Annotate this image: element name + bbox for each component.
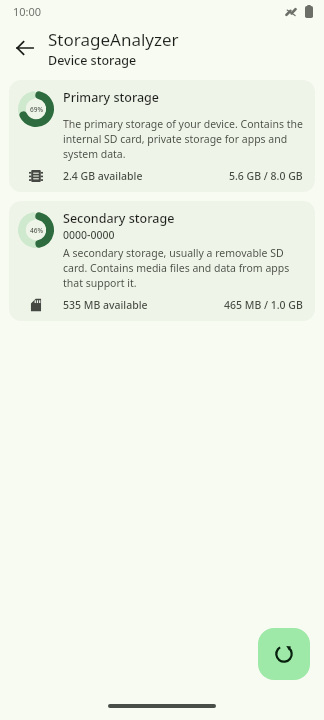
staticText: 535 MB available (63, 298, 148, 312)
button[interactable]: Refresh (258, 628, 310, 680)
staticText: StorageAnalyzer (48, 28, 179, 51)
staticText: 5.6 GB / 8.0 GB (229, 169, 303, 183)
staticText: The primary storage of your device. Cont… (63, 117, 303, 161)
staticText: 2.4 GB available (63, 169, 143, 183)
staticText: 69% (30, 105, 43, 114)
staticText: 10:00 (13, 4, 42, 19)
staticText: Device storage (48, 52, 137, 69)
staticText: 0000-0000 (63, 228, 115, 242)
staticText: A secondary storage, usually a removable… (63, 246, 303, 290)
button[interactable]: Back (6, 29, 44, 67)
staticText: Primary storage (63, 89, 160, 106)
staticText: 465 MB / 1.0 GB (224, 298, 303, 312)
staticText: 46% (30, 226, 43, 235)
button[interactable]: 69% (9, 80, 315, 192)
button[interactable]: 46% (9, 201, 315, 321)
staticText: Secondary storage (63, 210, 175, 227)
